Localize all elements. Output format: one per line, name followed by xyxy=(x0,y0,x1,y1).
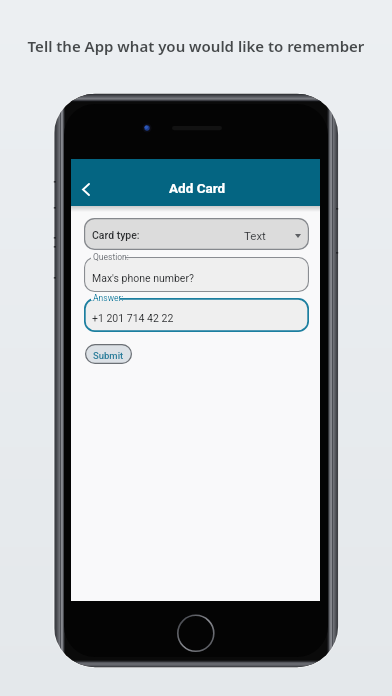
staticText: Add Card xyxy=(169,180,226,196)
button[interactable]: Submit xyxy=(85,344,132,364)
staticText: Max's phone number? xyxy=(92,272,194,284)
button[interactable]: Back xyxy=(72,175,100,203)
staticText: Card type: xyxy=(92,229,140,241)
button[interactable]: Question: xyxy=(84,257,309,292)
staticText: Text xyxy=(244,229,266,242)
staticText: +1 201 714 42 22 xyxy=(92,312,174,324)
staticText: Tell the App what you would like to reme… xyxy=(0,36,392,56)
staticText: Question: xyxy=(93,252,129,262)
staticText: Submit xyxy=(93,350,124,361)
button[interactable]: Card type: xyxy=(84,218,309,250)
staticText: Answer: xyxy=(93,293,124,303)
button[interactable]: Answer: xyxy=(84,298,309,332)
